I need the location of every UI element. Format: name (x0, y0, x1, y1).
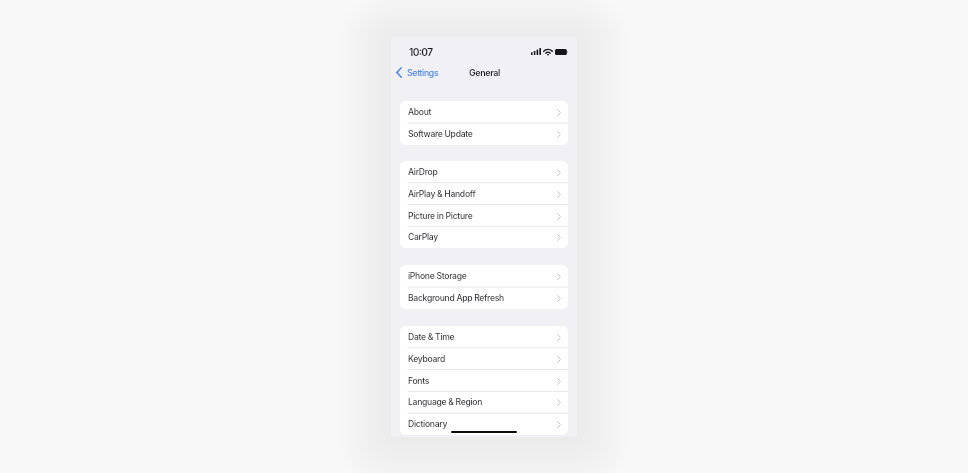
button[interactable]: CarPlay (400, 226, 568, 248)
button[interactable]: AirPlay & Handoff (400, 183, 568, 205)
button[interactable]: Back to Settings (395, 66, 440, 79)
staticText: Fonts (408, 376, 557, 386)
staticText: 10:07 (409, 46, 433, 58)
button[interactable]: AirDrop (400, 161, 568, 183)
button[interactable]: Background App Refresh (400, 287, 568, 309)
button[interactable]: Date & Time (400, 326, 568, 348)
staticText: Date & Time (408, 332, 557, 342)
staticText: Software Update (408, 129, 557, 139)
staticText: iPhone Storage (408, 271, 557, 281)
staticText: Picture in Picture (408, 211, 557, 221)
staticText: AirDrop (408, 167, 557, 177)
staticText: General (469, 67, 501, 78)
button[interactable]: iPhone Storage (400, 265, 568, 287)
button[interactable]: Language & Region (400, 391, 568, 413)
staticText: Keyboard (408, 354, 557, 364)
staticText: Settings (407, 67, 439, 78)
staticText: Language & Region (408, 397, 557, 407)
staticText: Dictionary (408, 419, 557, 429)
button[interactable]: Keyboard (400, 348, 568, 370)
button[interactable]: Picture in Picture (400, 205, 568, 227)
staticText: AirPlay & Handoff (408, 189, 557, 199)
button[interactable]: Software Update (400, 123, 568, 145)
button[interactable]: Dictionary (400, 413, 568, 435)
button[interactable]: Fonts (400, 370, 568, 392)
button[interactable]: About (400, 101, 568, 123)
staticText: CarPlay (408, 232, 557, 242)
staticText: About (408, 107, 557, 117)
staticText: Background App Refresh (408, 293, 557, 303)
